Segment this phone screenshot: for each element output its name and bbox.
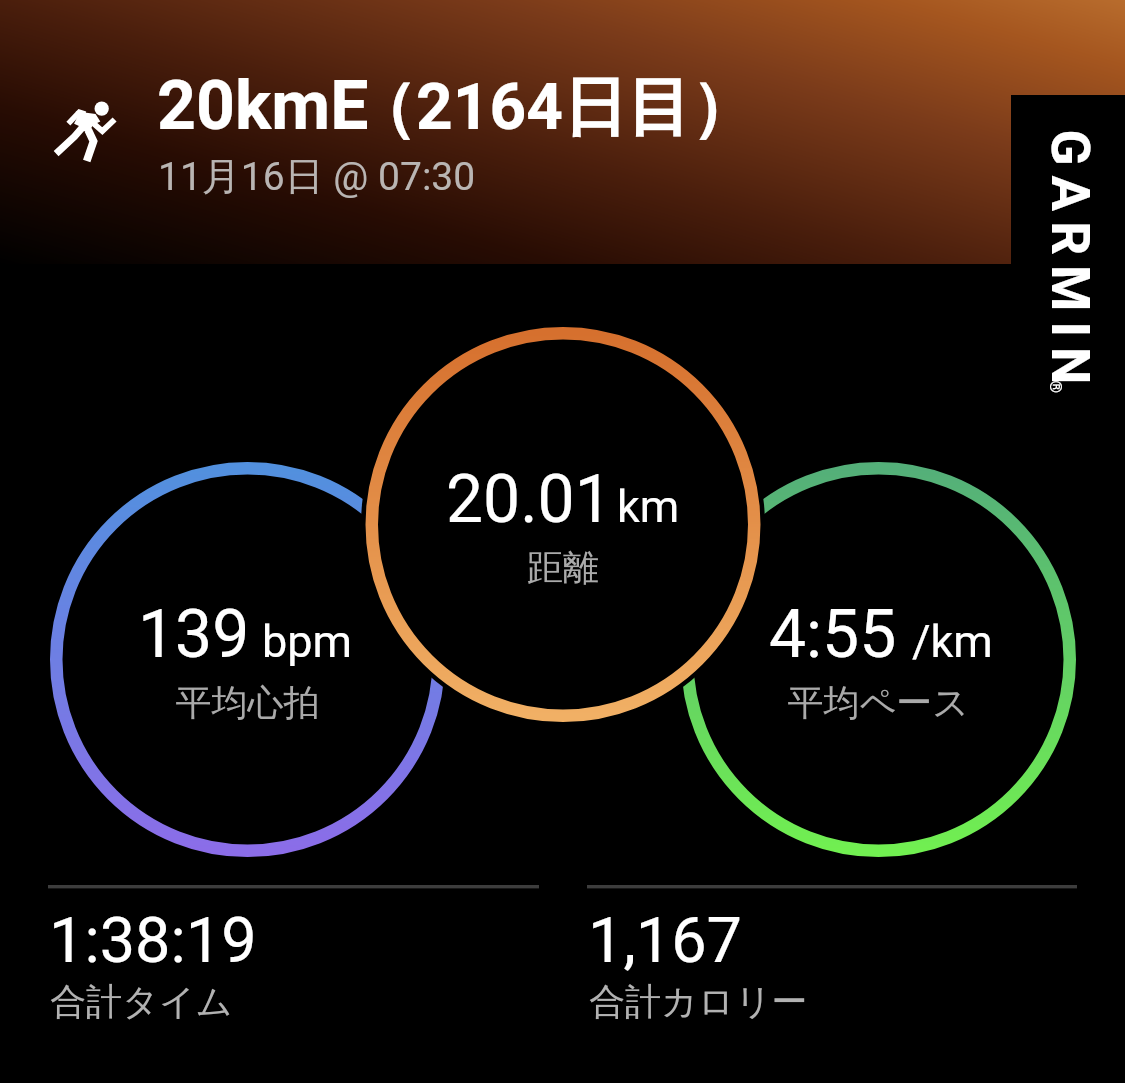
button[interactable]: 平均ペース 4:55 /km bbox=[681, 462, 1076, 857]
button[interactable]: 平均心拍 139 bpm bbox=[50, 462, 445, 857]
button[interactable]: GARMIN bbox=[1011, 95, 1125, 264]
button[interactable]: 合計タイム 1:38:19 bbox=[48, 885, 539, 1030]
button[interactable]: 距離 20.01 km bbox=[365, 327, 761, 723]
button[interactable]: 20kmE (2164日目), 11月16日 @ 07:30 bbox=[0, 0, 1011, 264]
button[interactable]: 合計カロリー 1,167 bbox=[587, 885, 1077, 1030]
